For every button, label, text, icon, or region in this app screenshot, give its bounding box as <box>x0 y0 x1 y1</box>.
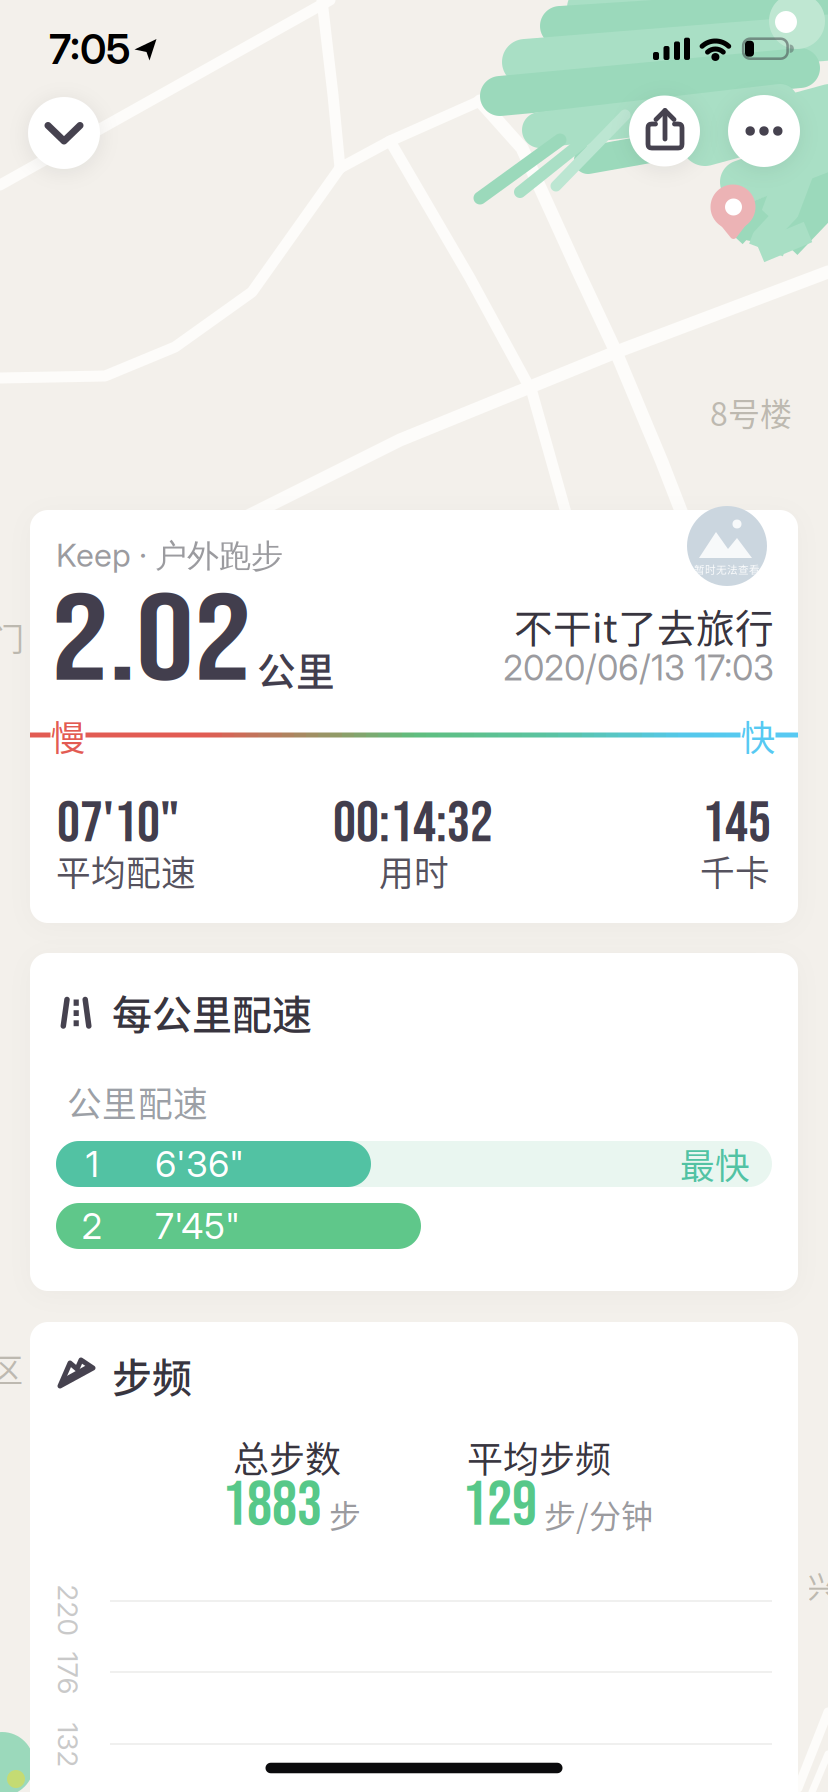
staticText: 总步数 <box>233 1431 341 1483</box>
staticText: 最快 <box>680 1139 750 1189</box>
staticText: 兴 <box>807 1564 828 1606</box>
staticText: 132 <box>45 1728 90 1762</box>
staticText: 7:05 <box>49 24 131 74</box>
staticText: 千卡 <box>700 846 770 896</box>
staticText: 2 <box>81 1204 102 1248</box>
staticText: 145 <box>702 790 771 858</box>
button[interactable]: Collapse map <box>28 97 100 169</box>
button[interactable]: User profile <box>687 506 767 586</box>
staticText: 1 <box>85 1142 98 1186</box>
staticText: 6'36" <box>155 1142 244 1186</box>
staticText: 2.02 <box>51 569 221 717</box>
staticText: 步 <box>329 1491 361 1537</box>
staticText: 用时 <box>379 846 449 896</box>
staticText: 门 <box>0 614 24 660</box>
staticText: 1883 <box>222 1468 322 1544</box>
staticText: 07'10" <box>57 790 179 858</box>
staticText: 区 <box>0 1345 23 1391</box>
staticText: 配速 <box>138 1077 208 1127</box>
staticText: 暂时无法查看 <box>694 561 760 577</box>
staticText: 慢 <box>50 711 85 761</box>
button[interactable]: More options <box>728 95 800 167</box>
button[interactable]: Share <box>629 95 700 166</box>
staticText: 不干it了去旅行 <box>514 598 774 654</box>
staticText: 220 <box>42 1593 93 1627</box>
staticText: 步/分钟 <box>544 1491 653 1537</box>
staticText: Keep · 户外跑步 <box>56 536 283 576</box>
staticText: 8号楼 <box>710 389 792 435</box>
staticText: 快 <box>740 711 775 761</box>
staticText: 平均步频 <box>467 1431 611 1483</box>
staticText: 步频 <box>112 1346 192 1404</box>
staticText: 平均配速 <box>56 846 196 896</box>
staticText: 129 <box>462 1468 537 1544</box>
staticText: 公里 <box>67 1077 137 1127</box>
staticText: 每公里配速 <box>112 983 312 1041</box>
staticText: 00:14:32 <box>333 790 493 858</box>
staticText: 2020/06/13 17:03 <box>503 647 774 689</box>
staticText: 公里 <box>257 641 335 697</box>
staticText: 7'45" <box>155 1204 240 1248</box>
staticText: 176 <box>46 1656 89 1690</box>
